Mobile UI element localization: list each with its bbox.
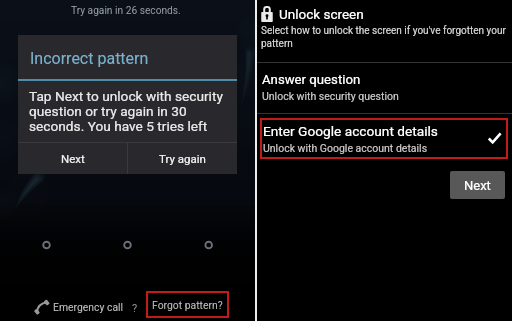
staticText: Try again in 26 seconds. [71,5,181,17]
staticText: Try again [159,152,206,165]
staticText: Select how to unlock the screen if you'v… [261,25,509,49]
staticText: Answer question [262,72,361,87]
staticText: Incorrect pattern [30,49,149,68]
button[interactable]: Next [18,143,127,174]
button[interactable]: Try again [128,143,237,174]
staticText: Enter Google account details [263,123,438,139]
staticText: Forgot pattern? [152,299,223,311]
staticText: Unlock with Google account details [263,142,428,154]
button[interactable]: Enter Google account details [260,118,508,159]
button[interactable]: Answer question [257,63,512,113]
staticText: ? [132,302,138,315]
staticText: Unlock screen [279,6,364,22]
button[interactable]: Next [450,171,505,199]
staticText: Next [464,178,491,193]
staticText: Tap Next to unlock with security questio… [29,88,226,134]
button[interactable]: Forgot pattern? [146,291,229,318]
staticText: Emergency call [53,301,124,313]
staticText: Next [61,152,85,165]
button[interactable]: Emergency call [33,298,126,316]
other: Selected [488,132,501,145]
staticText: Unlock with security question [262,90,399,102]
